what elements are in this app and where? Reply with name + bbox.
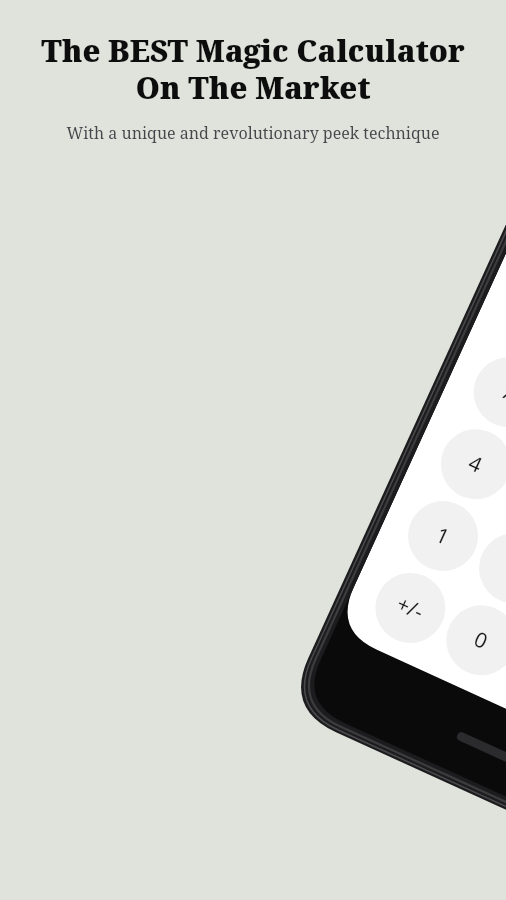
staticText: The BEST Magic Calculator On The Market xyxy=(14,30,492,108)
staticText: With a unique and revolutionary peek tec… xyxy=(14,122,492,144)
other: Magic Calculator app preview xyxy=(0,0,506,900)
